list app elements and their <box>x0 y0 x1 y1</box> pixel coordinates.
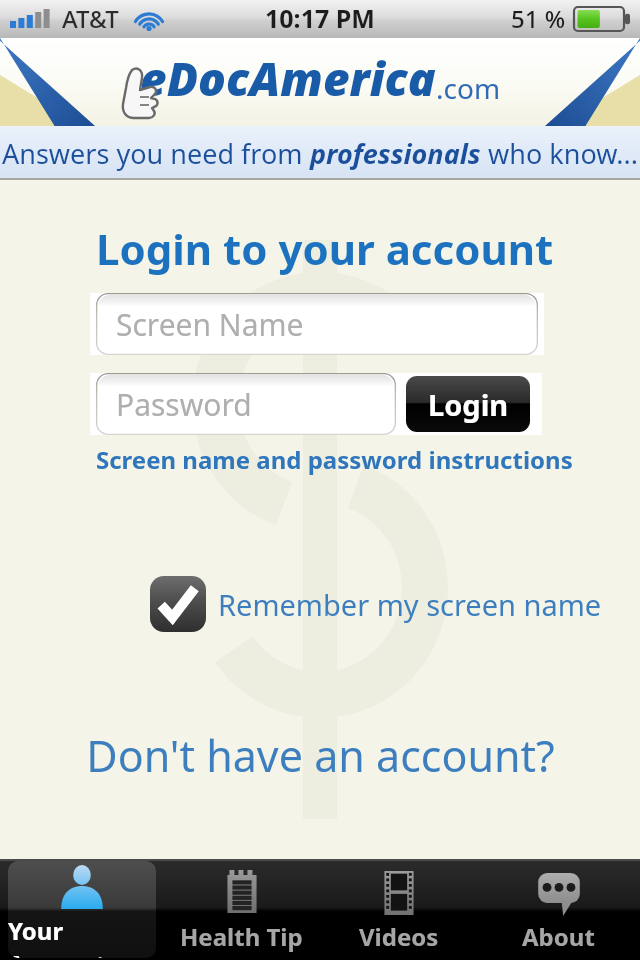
staticText: 10:17 PM <box>265 1 375 35</box>
button[interactable]: Don't have an account? <box>0 726 640 785</box>
button[interactable]: Health Tip <box>167 861 315 958</box>
staticText: professionals <box>310 135 481 172</box>
staticText: Password <box>116 384 252 425</box>
staticText: Videos <box>359 920 439 953</box>
staticText: Login <box>428 385 509 424</box>
button[interactable]: Screen name and password instructions <box>96 443 573 476</box>
button[interactable]: Remember my screen name checkbox <box>150 576 602 632</box>
staticText: Login to your account <box>96 220 554 277</box>
staticText: AT&T <box>62 2 119 35</box>
button[interactable]: Videos <box>325 861 473 958</box>
staticText: eDocAmerica <box>140 47 436 110</box>
button[interactable]: About <box>484 861 632 958</box>
button[interactable]: Password <box>96 373 396 435</box>
button[interactable]: Login <box>406 376 530 432</box>
staticText: Screen Name <box>116 304 304 345</box>
staticText: About <box>522 920 595 953</box>
staticText: who know... <box>481 135 639 172</box>
staticText: Screen name and password instructions <box>96 443 573 476</box>
button[interactable]: Remember my screen name checkbox <box>150 576 206 632</box>
staticText: 51 % <box>511 2 566 35</box>
staticText: Health Tip <box>180 920 303 953</box>
button[interactable]: Screen Name <box>96 293 538 355</box>
staticText: Answers you need from <box>2 135 310 172</box>
staticText: Don't have an account? <box>86 726 555 785</box>
staticText: .com <box>436 69 501 107</box>
staticText: Remember my screen name <box>218 585 602 624</box>
staticText: Your Account <box>8 914 156 958</box>
button[interactable]: Your Account <box>8 861 156 958</box>
